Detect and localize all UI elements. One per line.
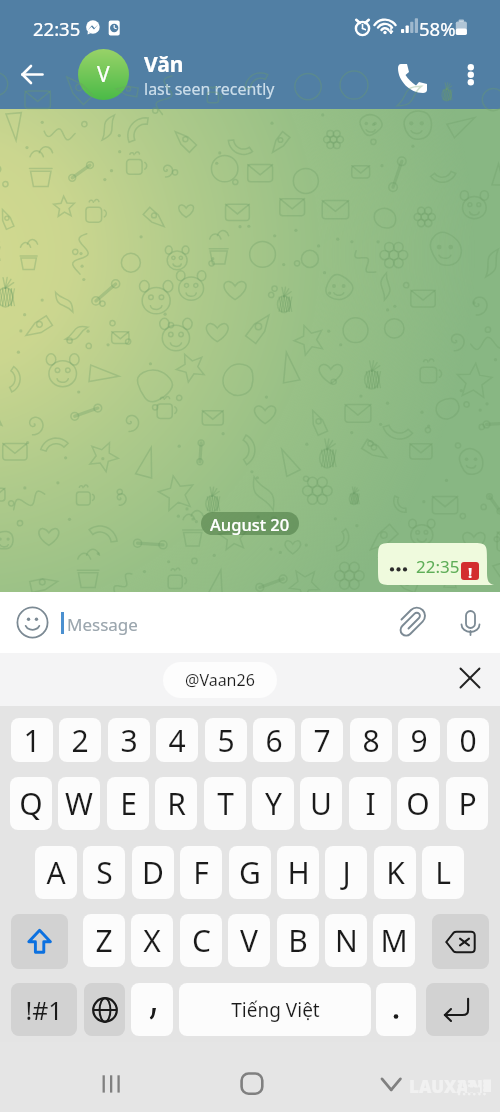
button[interactable]: U: [300, 777, 342, 830]
button[interactable]: N: [325, 914, 367, 967]
staticText: L: [435, 852, 451, 893]
button[interactable]: Q: [10, 777, 52, 830]
button[interactable]: Z: [83, 914, 125, 967]
button[interactable]: B: [277, 914, 319, 967]
staticText: 2: [71, 720, 89, 761]
button[interactable]: [376, 983, 416, 1036]
button[interactable]: 7: [301, 718, 343, 762]
staticText: K: [386, 852, 405, 893]
staticText: X: [143, 920, 161, 961]
staticText: 1: [23, 720, 41, 761]
button[interactable]: V: [228, 914, 270, 967]
button[interactable]: I: [349, 777, 391, 830]
button[interactable]: R: [155, 777, 197, 830]
staticText: I: [365, 783, 376, 824]
staticText: 7: [313, 720, 331, 761]
button[interactable]: V: [78, 49, 129, 100]
staticText: A: [46, 852, 66, 893]
button[interactable]: T: [204, 777, 246, 830]
button[interactable]: X: [131, 914, 173, 967]
staticText: 5: [217, 720, 235, 761]
button[interactable]: Attach: [396, 606, 429, 639]
staticText: LAUXAN: [409, 1075, 483, 1098]
button[interactable]: 5: [205, 718, 247, 762]
button[interactable]: 9: [398, 718, 440, 762]
button[interactable]: Hide keyboard: [372, 1060, 410, 1098]
button[interactable]: M: [373, 914, 415, 967]
button[interactable]: J: [325, 846, 367, 899]
staticText: 4: [168, 720, 186, 761]
staticText: 8: [362, 720, 380, 761]
staticText: 0: [459, 720, 477, 761]
staticText: N: [335, 920, 358, 961]
staticText: 6: [265, 720, 283, 761]
staticText: 22:35: [416, 555, 460, 578]
button[interactable]: August 20: [201, 512, 299, 535]
button[interactable]: A: [35, 846, 77, 899]
button[interactable]: 4: [156, 718, 198, 762]
button[interactable]: Emoji: [16, 606, 49, 639]
button[interactable]: !#1: [11, 983, 77, 1036]
button[interactable]: 8: [350, 718, 392, 762]
button[interactable]: Record voice message: [454, 606, 487, 639]
button[interactable]: L: [422, 846, 464, 899]
button[interactable]: [84, 983, 125, 1036]
staticText: R: [167, 783, 186, 824]
button[interactable]: C: [180, 914, 222, 967]
staticText: @Vaan26: [185, 669, 255, 691]
button[interactable]: More options: [448, 52, 493, 97]
staticText: Y: [265, 783, 282, 824]
button[interactable]: Close suggestions: [453, 661, 487, 695]
staticText: 9: [410, 720, 428, 761]
staticText: J: [342, 852, 351, 893]
button[interactable]: O: [397, 777, 439, 830]
staticText: C: [192, 920, 211, 961]
button[interactable]: 3: [108, 718, 150, 762]
staticText: last seen recently: [144, 78, 275, 100]
button[interactable]: P: [446, 777, 488, 830]
staticText: August 20: [210, 513, 290, 535]
button[interactable]: @Vaan26: [163, 662, 277, 698]
staticText: G: [239, 852, 261, 893]
staticText: 58%: [419, 16, 456, 41]
button[interactable]: E: [107, 777, 149, 830]
staticText: T: [217, 783, 234, 824]
staticText: M: [380, 920, 408, 961]
staticText: !#1: [25, 993, 63, 1027]
button[interactable]: Back: [10, 52, 55, 97]
button[interactable]: G: [229, 846, 271, 899]
staticText: D: [142, 852, 164, 893]
button[interactable]: S: [83, 846, 125, 899]
button[interactable]: Recent apps: [87, 1060, 135, 1108]
staticText: Q: [19, 783, 43, 824]
button[interactable]: F: [180, 846, 222, 899]
button[interactable]: 0: [447, 718, 489, 762]
staticText: E: [120, 783, 137, 824]
staticText: S: [96, 852, 113, 893]
button[interactable]: [11, 914, 68, 969]
button[interactable]: Y: [252, 777, 294, 830]
staticText: O: [406, 783, 430, 824]
button[interactable]: Tiếng Việt: [179, 983, 371, 1036]
button[interactable]: [432, 914, 489, 969]
button[interactable]: 1: [11, 718, 53, 762]
staticText: U: [310, 783, 332, 824]
staticText: W: [65, 783, 93, 824]
button[interactable]: D: [132, 846, 174, 899]
staticText: Văn: [144, 50, 184, 79]
staticText: !: [468, 562, 473, 580]
button[interactable]: Home: [228, 1060, 276, 1108]
staticText: F: [193, 852, 209, 893]
button[interactable]: Call: [390, 52, 435, 97]
button[interactable]: 2: [59, 718, 101, 762]
staticText: Z: [95, 920, 113, 961]
staticText: 3: [120, 720, 138, 761]
button[interactable]: W: [58, 777, 100, 830]
button[interactable]: K: [374, 846, 416, 899]
button[interactable]: [131, 983, 173, 1036]
button[interactable]: H: [277, 846, 319, 899]
button[interactable]: [426, 983, 489, 1036]
staticText: V: [240, 920, 258, 961]
staticText: H: [287, 852, 310, 893]
button[interactable]: 6: [253, 718, 295, 762]
